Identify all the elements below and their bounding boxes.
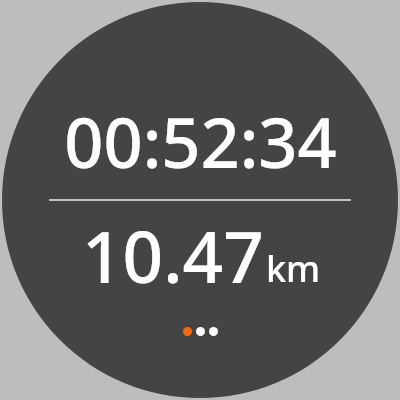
button[interactable]: 10.47 <box>2 207 398 304</box>
staticText: 10.47 <box>82 207 264 304</box>
button[interactable]: Page 3 of 3 <box>209 327 218 336</box>
button[interactable]: Page 2 of 3 <box>196 327 205 336</box>
button[interactable]: 00:52:34 <box>2 95 398 188</box>
staticText: km <box>266 244 321 293</box>
button[interactable]: Workout stats <box>2 2 398 398</box>
staticText: 00:52:34 <box>64 95 337 188</box>
button[interactable]: Page 1 of 3, selected <box>183 327 192 336</box>
